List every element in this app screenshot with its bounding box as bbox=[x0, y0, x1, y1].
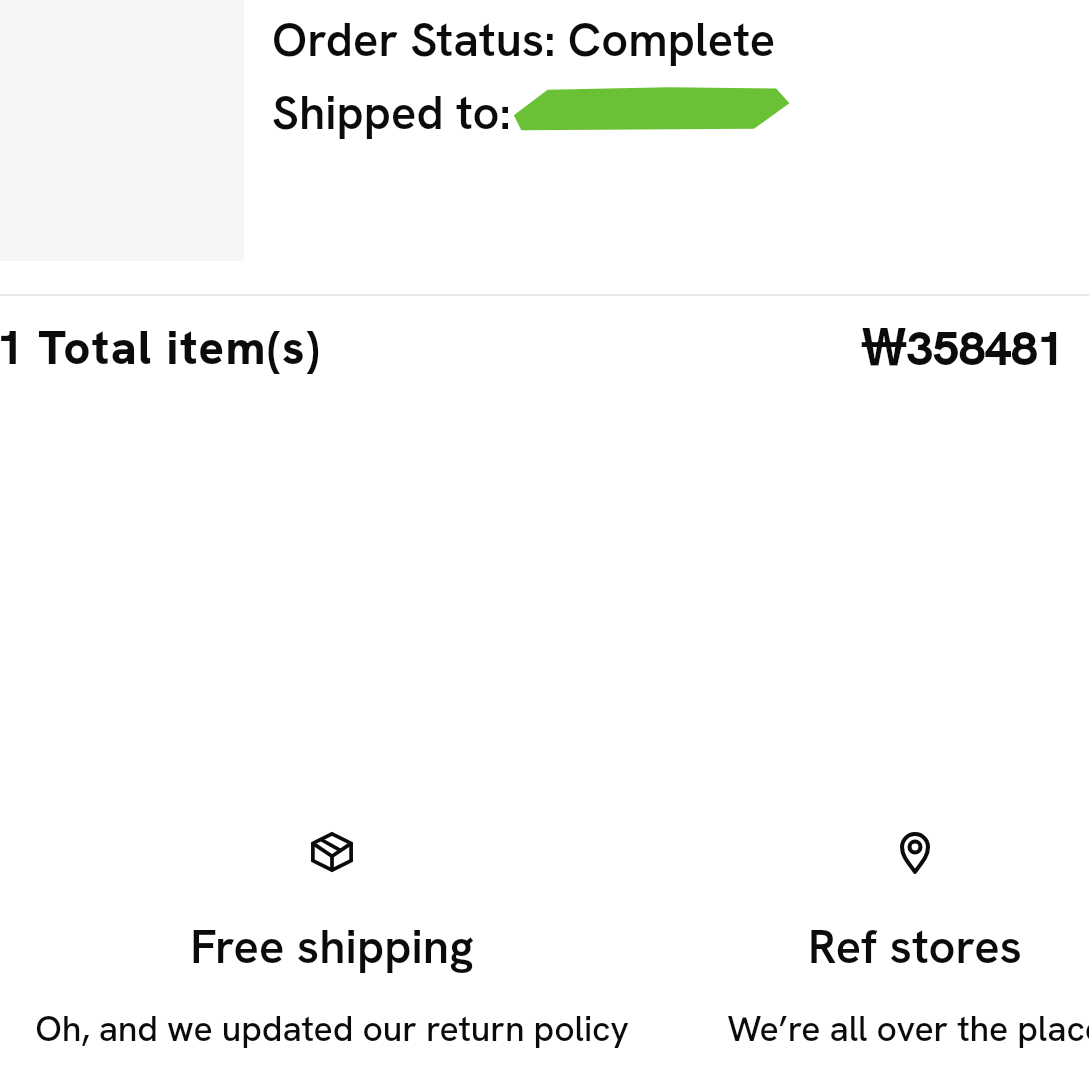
staticText: ₩358481 bbox=[861, 318, 1064, 379]
staticText: Shipped to: bbox=[272, 82, 511, 143]
staticText: Free shipping bbox=[190, 916, 474, 977]
staticText: Ref stores bbox=[808, 916, 1022, 977]
button[interactable]: 1 Total item(s) bbox=[0, 300, 1089, 390]
staticText: Order Status: Complete bbox=[272, 9, 776, 70]
other: Redacted shipping address bbox=[513, 87, 790, 131]
staticText: Oh, and we updated our return policy bbox=[35, 1005, 629, 1051]
staticText: We’re all over the place bbox=[727, 1005, 1089, 1051]
button[interactable]: Free shipping bbox=[42, 824, 622, 1051]
button[interactable]: Ref stores bbox=[625, 824, 1089, 1051]
staticText: 1 Total item(s) bbox=[0, 317, 322, 378]
button[interactable]: Order Status: Complete bbox=[260, 0, 820, 160]
